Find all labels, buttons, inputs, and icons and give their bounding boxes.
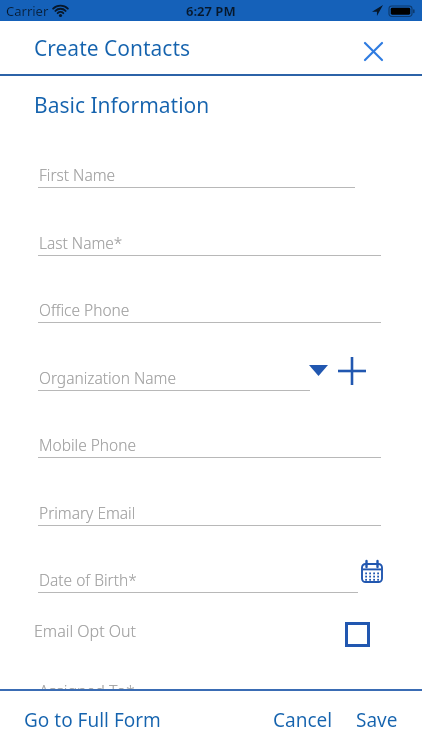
- button[interactable]: Mobile Phone: [38, 432, 381, 458]
- staticText: Email Opt Out: [34, 620, 136, 642]
- button[interactable]: [342, 619, 372, 649]
- button[interactable]: [358, 558, 386, 586]
- staticText: Primary Email: [39, 502, 136, 523]
- staticText: First Name: [39, 164, 116, 185]
- button[interactable]: [336, 355, 368, 387]
- button[interactable]: [305, 358, 333, 382]
- button[interactable]: [358, 36, 388, 66]
- button[interactable]: Office Phone: [38, 297, 381, 323]
- staticText: Basic Information: [34, 91, 210, 120]
- button[interactable]: Primary Email: [38, 500, 381, 526]
- staticText: Date of Birth*: [39, 569, 137, 590]
- staticText: Create Contacts: [34, 34, 191, 63]
- button[interactable]: Save: [346, 697, 408, 743]
- button[interactable]: Last Name*: [38, 230, 381, 256]
- button[interactable]: Organization Name: [38, 365, 310, 391]
- button[interactable]: Date of Birth*: [38, 567, 358, 593]
- staticText: Go to Full Form: [24, 707, 161, 733]
- staticText: Last Name*: [39, 232, 123, 253]
- staticText: Save: [356, 707, 398, 733]
- button[interactable]: Cancel: [263, 697, 343, 743]
- staticText: 6:27 PM: [186, 2, 236, 20]
- staticText: Office Phone: [39, 299, 130, 320]
- staticText: Organization Name: [39, 367, 177, 388]
- button[interactable]: First Name: [38, 162, 355, 188]
- staticText: Cancel: [273, 707, 333, 733]
- staticText: Assigned To*: [39, 680, 135, 702]
- button[interactable]: Go to Full Form: [14, 697, 171, 743]
- staticText: Carrier: [6, 2, 49, 20]
- staticText: Mobile Phone: [39, 434, 136, 455]
